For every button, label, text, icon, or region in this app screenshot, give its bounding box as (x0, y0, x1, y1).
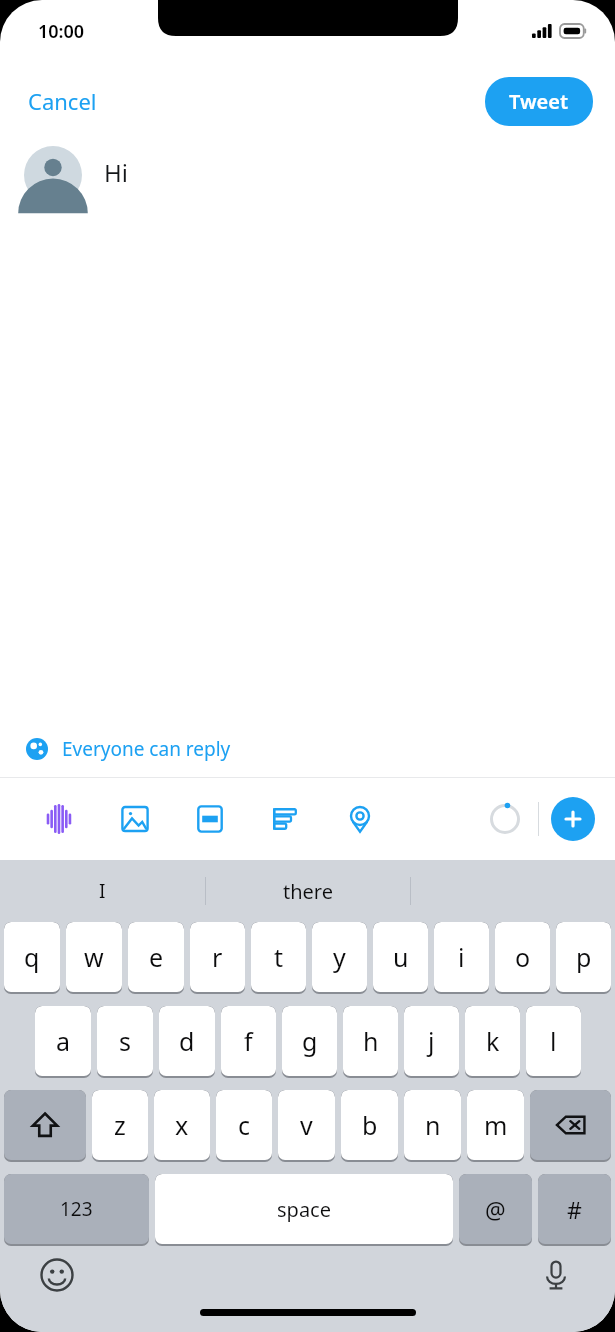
staticText: v (300, 1108, 313, 1142)
button[interactable]: l (526, 1006, 581, 1076)
button[interactable]: a (35, 1006, 91, 1076)
button[interactable]: there (206, 860, 410, 922)
button[interactable]: i (434, 922, 489, 992)
button[interactable]: Poll (247, 789, 322, 849)
staticText: n (425, 1108, 441, 1142)
button[interactable]: q (4, 922, 60, 992)
button[interactable]: Dictate (533, 1252, 579, 1298)
button[interactable]: y (312, 922, 367, 992)
staticText: s (119, 1024, 131, 1058)
button[interactable]: Delete (530, 1090, 611, 1160)
button[interactable]: GIF (172, 789, 247, 849)
button[interactable]: h (343, 1006, 398, 1076)
staticText: k (486, 1024, 500, 1058)
button[interactable]: o (495, 922, 550, 992)
button[interactable]: e (128, 922, 184, 992)
button[interactable]: Tweet (485, 77, 593, 126)
button[interactable]: space (155, 1174, 453, 1244)
button[interactable]: j (404, 1006, 459, 1076)
staticText: r (212, 940, 223, 974)
button[interactable]: k (465, 1006, 520, 1076)
staticText: w (84, 940, 104, 974)
button[interactable]: u (373, 922, 428, 992)
staticText: 10:00 (38, 19, 85, 44)
button[interactable]: p (556, 922, 611, 992)
button[interactable]: f (221, 1006, 276, 1076)
button[interactable]: b (341, 1090, 398, 1160)
button[interactable]: g (282, 1006, 337, 1076)
staticText: @ (485, 1194, 506, 1225)
button[interactable]: Add tweet (551, 797, 595, 841)
staticText: x (175, 1108, 189, 1142)
button[interactable]: w (66, 922, 122, 992)
button[interactable]: # (538, 1174, 611, 1244)
staticText: d (179, 1024, 195, 1058)
button[interactable]: Emoji (34, 1252, 80, 1298)
staticText: g (302, 1024, 318, 1058)
staticText: a (56, 1024, 71, 1058)
staticText: Cancel (28, 86, 97, 116)
staticText: l (550, 1024, 557, 1058)
staticText: t (274, 940, 284, 974)
button[interactable]: Character count (482, 796, 528, 842)
button[interactable]: Location (322, 789, 397, 849)
button[interactable]: r (190, 922, 245, 992)
button[interactable]: d (159, 1006, 215, 1076)
staticText: i (458, 940, 465, 974)
button[interactable]: Audio (22, 789, 97, 849)
staticText: # (567, 1194, 582, 1225)
staticText: there (283, 878, 333, 905)
staticText: f (244, 1024, 253, 1058)
staticText: c (238, 1108, 251, 1142)
button[interactable]: m (467, 1090, 524, 1160)
staticText: y (333, 940, 346, 974)
button[interactable]: n (404, 1090, 461, 1160)
button[interactable]: I (0, 860, 205, 922)
staticText: I (99, 878, 106, 904)
staticText: 123 (60, 1196, 93, 1222)
staticText: h (363, 1024, 379, 1058)
button[interactable]: x (154, 1090, 210, 1160)
button[interactable]: Photo (97, 789, 172, 849)
staticText: o (515, 940, 531, 974)
staticText: p (576, 940, 592, 974)
button[interactable]: v (278, 1090, 335, 1160)
staticText: e (149, 940, 164, 974)
staticText: Tweet (509, 88, 569, 115)
button[interactable]: t (251, 922, 306, 992)
staticText: Hi (104, 156, 128, 189)
button[interactable]: 123 (4, 1174, 149, 1244)
button[interactable]: Everyone can reply (0, 721, 615, 777)
button[interactable]: s (97, 1006, 153, 1076)
staticText: Everyone can reply (62, 736, 231, 762)
staticText: space (277, 1196, 331, 1223)
staticText: q (24, 940, 40, 974)
button[interactable]: Shift (4, 1090, 86, 1160)
staticText: j (428, 1024, 435, 1058)
button[interactable]: c (216, 1090, 272, 1160)
staticText: b (362, 1108, 378, 1142)
staticText: m (484, 1108, 508, 1142)
button[interactable]: z (92, 1090, 148, 1160)
staticText: u (393, 940, 409, 974)
staticText: z (114, 1108, 126, 1142)
button[interactable]: @ (459, 1174, 532, 1244)
button[interactable]: Cancel (12, 78, 113, 124)
